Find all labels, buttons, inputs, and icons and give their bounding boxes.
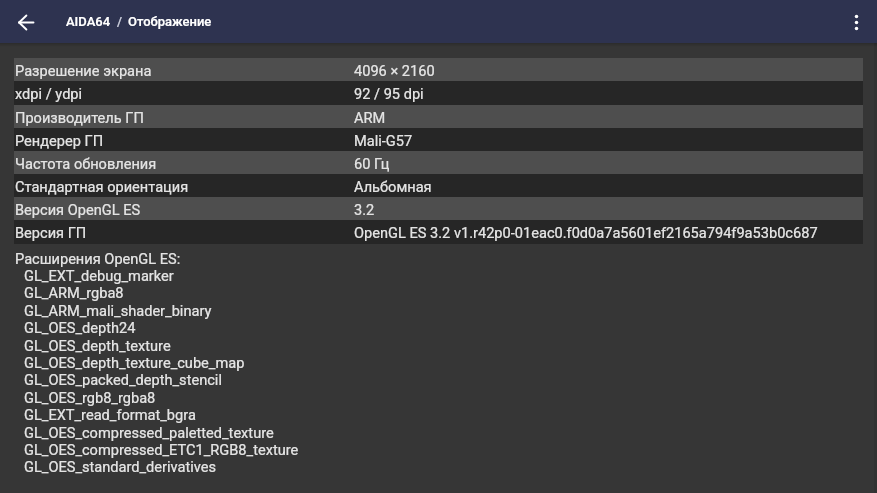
- staticText: GL_OES_compressed_paletted_texture: [24, 424, 274, 441]
- staticText: Частота обновления: [15, 155, 157, 172]
- staticText: Разрешение экрана: [15, 62, 152, 79]
- button[interactable]: Частота обновления: [14, 151, 863, 175]
- button[interactable]: Версия OpenGL ES: [14, 197, 863, 221]
- staticText: 60 Гц: [354, 155, 390, 172]
- staticText: AIDA64: [66, 14, 111, 29]
- staticText: Рендерер ГП: [15, 132, 104, 149]
- staticText: 92 / 95 dpi: [354, 85, 424, 102]
- button[interactable]: Рендерер ГП: [14, 128, 863, 152]
- staticText: GL_ARM_rgba8: [24, 284, 124, 301]
- button[interactable]: xdpi / ydpi: [14, 81, 863, 105]
- button[interactable]: More options: [834, 0, 877, 43]
- staticText: GL_ARM_mali_shader_binary: [24, 302, 212, 319]
- button[interactable]: Производитель ГП: [14, 105, 863, 129]
- button[interactable]: Разрешение экрана: [14, 58, 863, 82]
- staticText: Альбомная: [354, 178, 432, 195]
- staticText: 3.2: [354, 201, 375, 218]
- staticText: GL_OES_standard_derivatives: [24, 458, 216, 475]
- button[interactable]: Версия ГП: [14, 220, 863, 244]
- staticText: GL_OES_rgb8_rgba8: [24, 389, 156, 406]
- staticText: Производитель ГП: [15, 109, 144, 126]
- staticText: Отображение: [128, 14, 212, 29]
- staticText: Версия ГП: [15, 224, 87, 241]
- staticText: ARM: [354, 109, 386, 126]
- staticText: Стандартная ориентация: [15, 178, 189, 195]
- button[interactable]: Стандартная ориентация: [14, 174, 863, 198]
- staticText: GL_EXT_read_format_bgra: [24, 406, 196, 423]
- staticText: GL_OES_packed_depth_stencil: [24, 371, 222, 388]
- staticText: Mali-G57: [354, 132, 413, 149]
- button[interactable]: Back: [4, 0, 47, 43]
- staticText: GL_EXT_debug_marker: [24, 267, 174, 284]
- staticText: OpenGL ES 3.2 v1.r42p0-01eac0.f0d0a7a560…: [354, 224, 818, 241]
- staticText: 4096 × 2160: [354, 62, 435, 79]
- staticText: xdpi / ydpi: [15, 85, 83, 102]
- staticText: GL_OES_depth_texture: [24, 337, 171, 354]
- staticText: GL_OES_depth24: [24, 319, 136, 336]
- staticText: GL_OES_depth_texture_cube_map: [24, 354, 245, 371]
- staticText: Расширения OpenGL ES:: [15, 250, 181, 267]
- staticText: GL_OES_compressed_ETC1_RGB8_texture: [24, 441, 299, 458]
- staticText: /: [117, 14, 123, 29]
- staticText: Версия OpenGL ES: [15, 201, 141, 218]
